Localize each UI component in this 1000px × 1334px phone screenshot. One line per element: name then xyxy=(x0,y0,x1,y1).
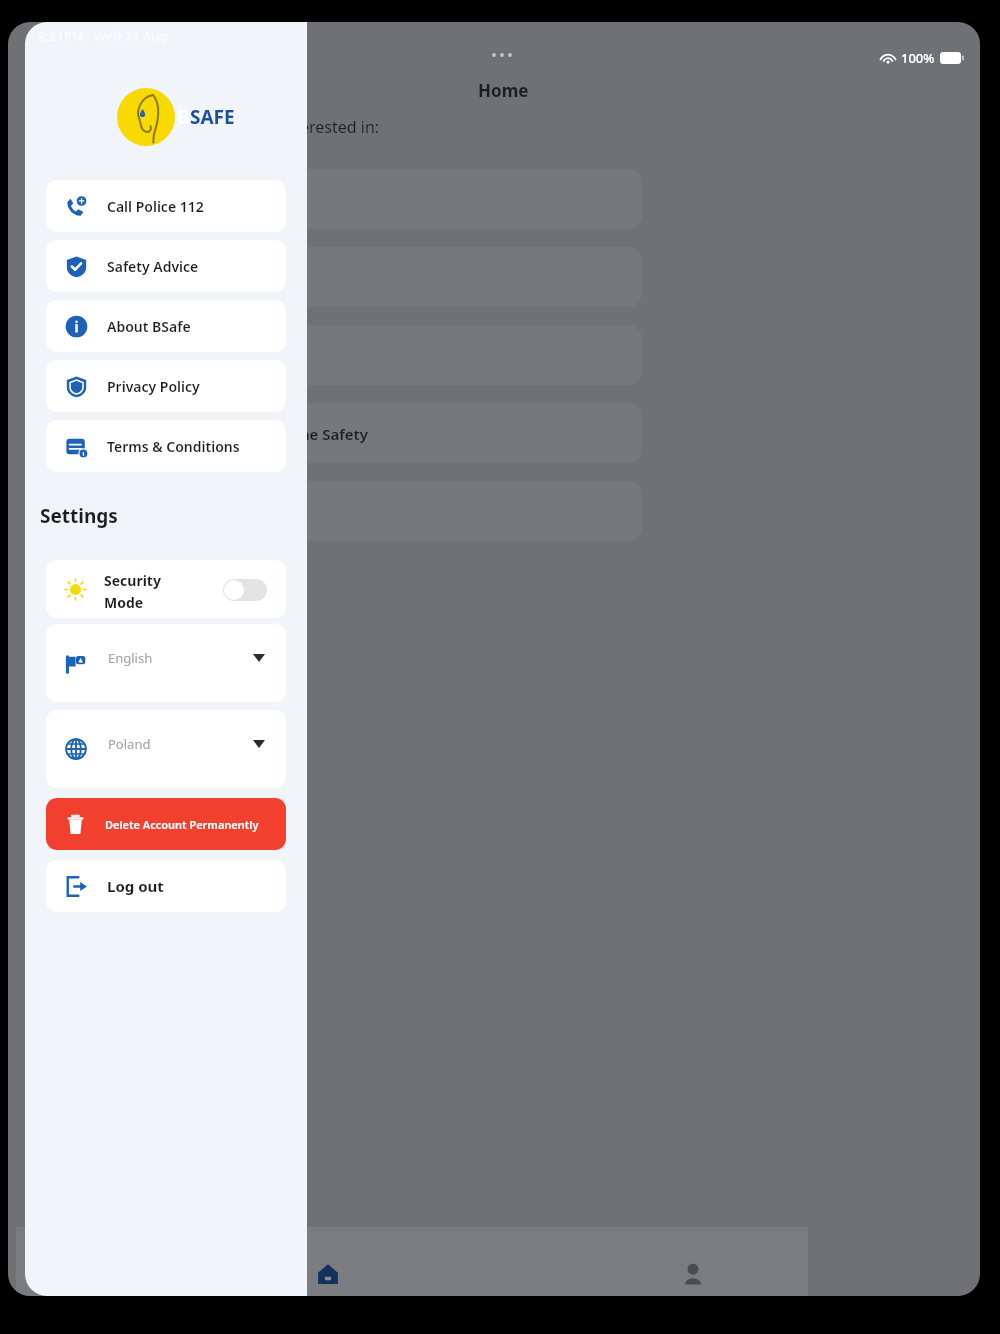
staticText: SAFE xyxy=(190,104,235,130)
button[interactable] xyxy=(30,247,642,307)
staticText: B xyxy=(177,104,190,130)
button[interactable] xyxy=(30,325,642,385)
staticText: Security xyxy=(104,571,161,590)
staticText: English xyxy=(108,649,153,667)
staticText: erested in: xyxy=(300,116,380,138)
staticText: Log out xyxy=(107,876,164,896)
button[interactable]: Call Police 112 xyxy=(46,180,286,232)
button[interactable]: About BSafe xyxy=(46,300,286,352)
staticText: 100% xyxy=(901,49,935,67)
staticText: Home xyxy=(478,79,529,102)
staticText: Settings xyxy=(40,503,118,529)
button[interactable]: Safety Advice xyxy=(46,240,286,292)
staticText: Terms & Conditions xyxy=(107,437,240,456)
staticText: 8:21PM Wed 21 Aug xyxy=(38,27,168,45)
button[interactable]: Log out xyxy=(46,860,286,912)
button[interactable]: Poland selector xyxy=(46,710,286,788)
button[interactable]: Terms & Conditions xyxy=(46,420,286,472)
staticText: About BSafe xyxy=(107,317,191,336)
button[interactable]: Home xyxy=(298,1244,358,1296)
staticText: Privacy Policy xyxy=(107,377,200,396)
button[interactable]: Delete Account Permanently xyxy=(46,798,286,850)
staticText: Poland xyxy=(108,735,151,753)
staticText: ne Safety xyxy=(300,424,368,444)
button[interactable] xyxy=(30,481,642,541)
button[interactable]: Security Mode toggle xyxy=(223,579,267,601)
staticText: Mode xyxy=(104,593,144,612)
button[interactable]: English selector xyxy=(46,624,286,702)
button[interactable]: Profile xyxy=(663,1244,723,1296)
staticText: Call Police 112 xyxy=(107,197,204,216)
button[interactable]: Privacy Policy xyxy=(46,360,286,412)
button[interactable] xyxy=(30,169,642,229)
staticText: Safety Advice xyxy=(107,257,199,276)
button[interactable]: Security xyxy=(46,560,286,618)
staticText: Delete Account Permanently xyxy=(105,817,259,832)
button[interactable]: ne Safety xyxy=(30,403,642,463)
